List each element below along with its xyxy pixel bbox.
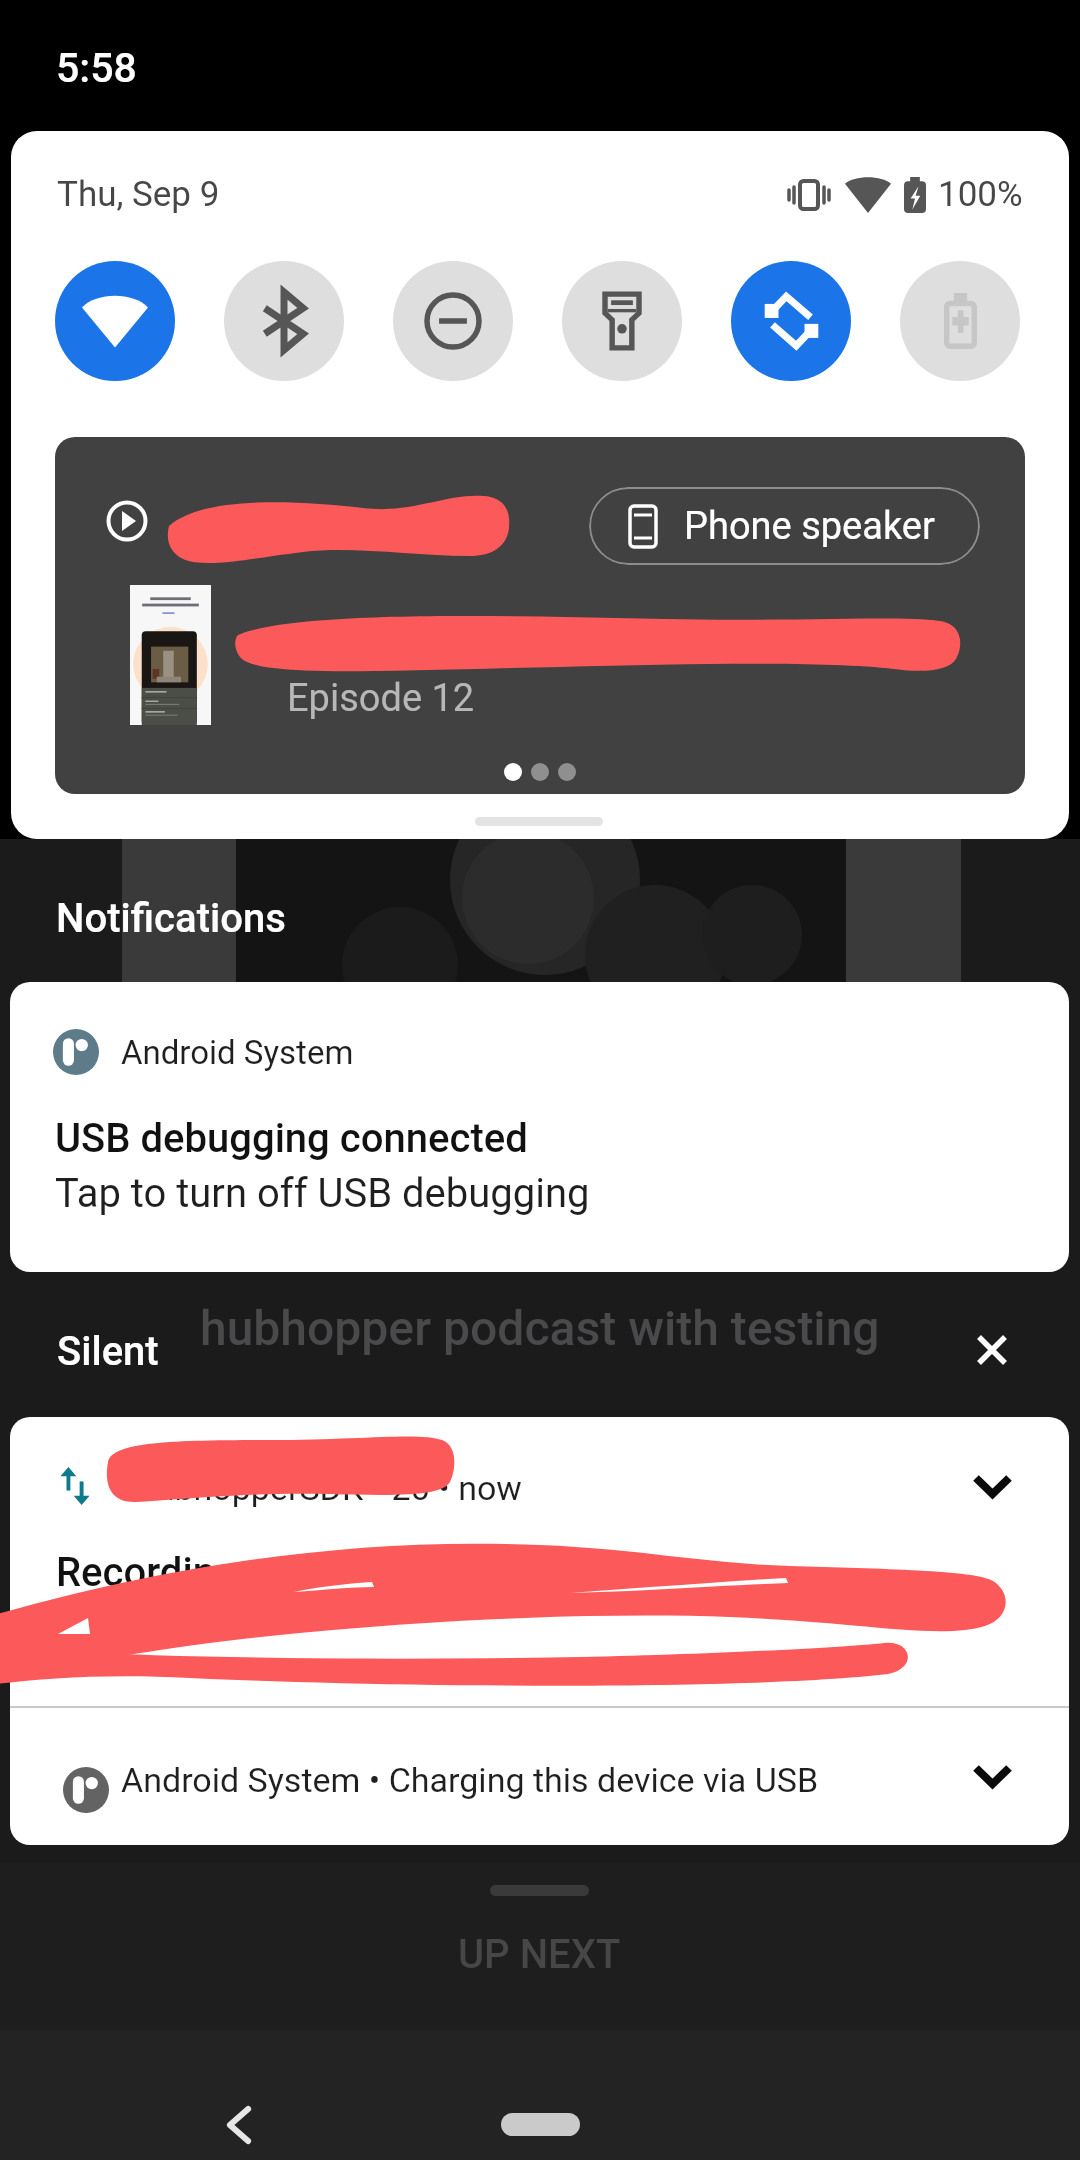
button[interactable]: Do not disturb <box>393 261 513 381</box>
staticText: UP NEXT <box>458 1931 621 1978</box>
staticText: Thu, Sep 9 <box>57 174 220 215</box>
button[interactable]: Back <box>206 2092 272 2158</box>
button[interactable]: Battery saver <box>900 261 1020 381</box>
staticText: hubhopper podcast with testing <box>200 1300 880 1356</box>
staticText: Phone speaker <box>684 504 935 549</box>
button[interactable]: Wi-Fi <box>55 261 175 381</box>
staticText: 5:58 <box>56 44 137 92</box>
button[interactable]: Android System <box>10 982 1069 1272</box>
staticText: Recording <box>56 1549 238 1596</box>
staticText: hubhopperSDK • 20 • now <box>137 1468 522 1508</box>
button[interactable]: Expand notification <box>957 1451 1027 1521</box>
button[interactable]: Bluetooth <box>224 261 344 381</box>
staticText: Android System • Charging this device vi… <box>121 1760 819 1800</box>
button[interactable]: Auto-rotate <box>731 261 851 381</box>
button[interactable]: Android System • Charging this device vi… <box>10 1708 1069 1845</box>
staticText: Silent <box>57 1328 159 1375</box>
staticText: Tap to turn off USB debugging <box>55 1170 590 1217</box>
staticText: Episode 12 <box>287 676 475 721</box>
button[interactable]: Home <box>501 2113 580 2136</box>
staticText: Android System <box>121 1033 354 1072</box>
staticText: 100% <box>938 174 1023 215</box>
staticText: Notifications <box>56 895 286 942</box>
button[interactable]: Flashlight <box>562 261 682 381</box>
button[interactable]: Expand notification <box>957 1741 1027 1811</box>
staticText: USB debugging connected <box>55 1115 528 1162</box>
button[interactable]: Phone speaker <box>589 487 980 565</box>
button[interactable]: Phone speaker <box>55 437 1025 794</box>
button[interactable]: Clear all silent notifications <box>958 1316 1026 1384</box>
button[interactable]: hubhopperSDK • 20 • now <box>10 1417 1069 1706</box>
